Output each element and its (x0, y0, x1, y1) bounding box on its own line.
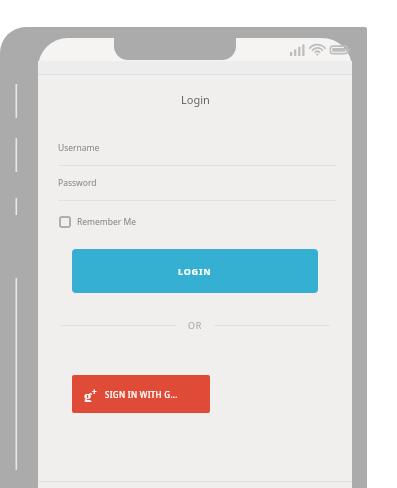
staticText: LOGIN (178, 265, 212, 277)
button[interactable]: Password (38, 166, 352, 201)
button[interactable]: g (72, 375, 210, 413)
staticText: OR (188, 319, 202, 331)
staticText: SIGN IN WITH G... (105, 389, 178, 400)
staticText: g (84, 387, 92, 402)
staticText: Login (181, 92, 210, 107)
button[interactable]: Remember Me (58, 212, 139, 232)
staticText: Username (58, 142, 100, 154)
staticText: Remember Me (77, 216, 137, 228)
button[interactable]: LOGIN (72, 249, 318, 293)
staticText: Password (58, 177, 97, 189)
button[interactable]: Username (38, 131, 352, 166)
staticText: + (92, 386, 97, 397)
